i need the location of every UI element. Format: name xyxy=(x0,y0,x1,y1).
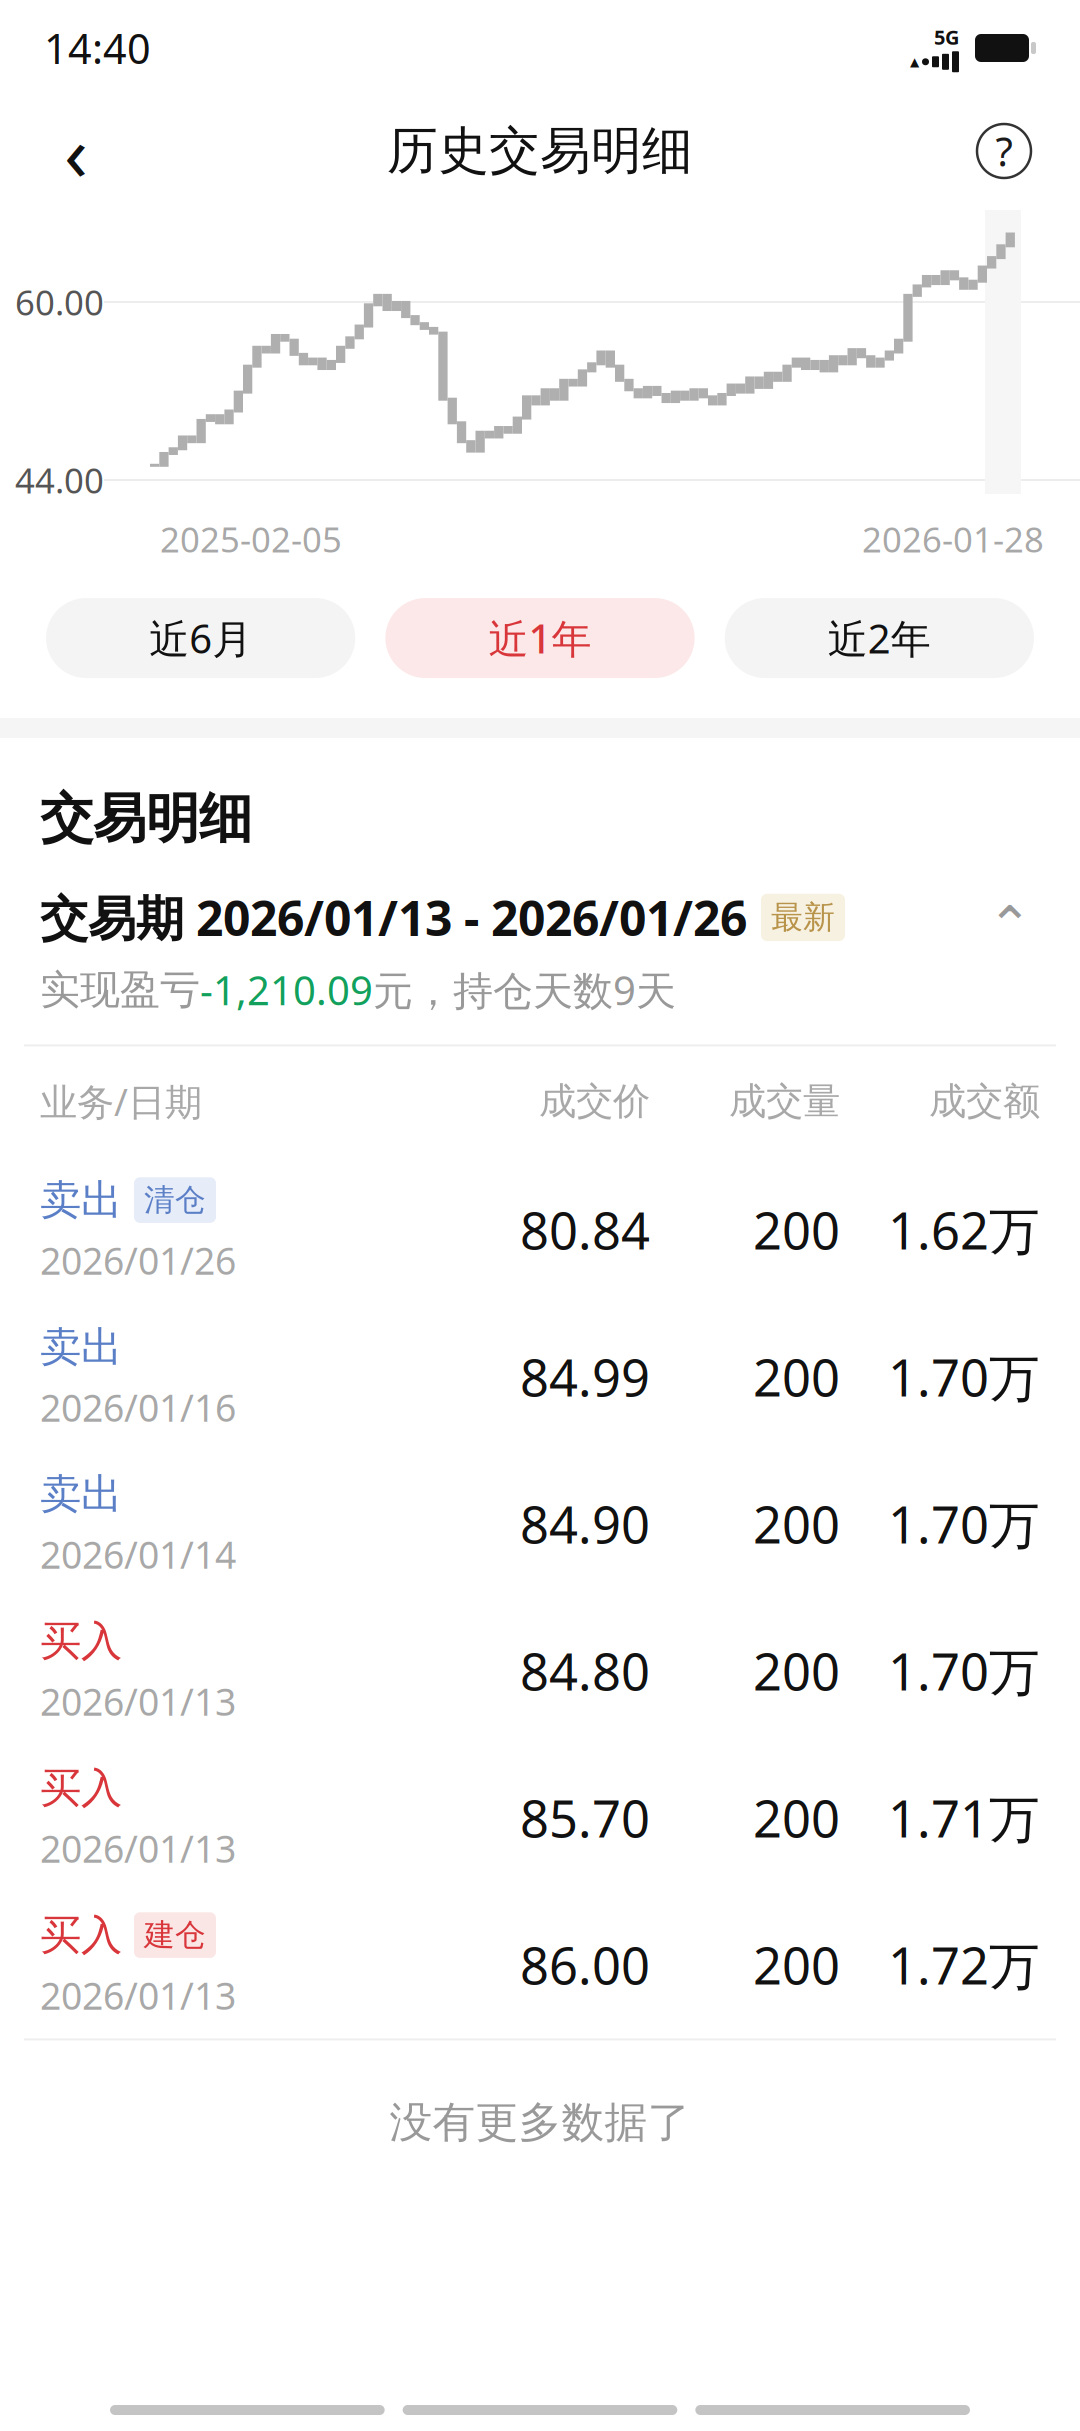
staticText: 60.00 xyxy=(15,279,104,325)
staticText: 1.70万 xyxy=(888,1637,1040,1705)
staticText: 85.70 xyxy=(520,1784,650,1852)
button[interactable]: 卖出 xyxy=(0,1303,1080,1450)
staticText: ⌃ xyxy=(987,895,1032,956)
staticText: ? xyxy=(995,124,1012,177)
staticText: 200 xyxy=(753,1196,840,1264)
staticText: 交易期 2026/01/13 - 2026/01/26 xyxy=(40,885,747,949)
staticText: 2026/01/14 xyxy=(40,1529,236,1579)
staticText: 没有更多数据了 xyxy=(389,2096,690,2149)
staticText: 1.71万 xyxy=(888,1784,1040,1852)
staticText: 2026/01/13 xyxy=(40,1823,236,1873)
button[interactable]: 买入 xyxy=(0,1744,1080,1891)
button[interactable]: 买入 xyxy=(0,1891,1080,2038)
staticText: 80.84 xyxy=(520,1196,650,1264)
staticText: 84.80 xyxy=(520,1637,650,1705)
staticText: ‹ xyxy=(64,100,88,202)
staticText: 卖出 xyxy=(40,1469,122,1519)
staticText: 清仓 xyxy=(144,1181,206,1219)
staticText: 近6月 xyxy=(149,611,252,665)
staticText: 86.00 xyxy=(520,1931,650,1999)
staticText: 2025-02-05 xyxy=(160,516,342,562)
staticText: 成交量 xyxy=(729,1078,840,1124)
staticText: 2026-01-28 xyxy=(862,516,1044,562)
staticText: 建仓 xyxy=(144,1916,206,1954)
staticText: 成交额 xyxy=(929,1078,1040,1124)
button[interactable]: 交易期 2026/01/13 - 2026/01/26 xyxy=(0,885,1080,1044)
staticText: 2026/01/13 xyxy=(40,1676,236,1726)
staticText: 实现盈亏 xyxy=(40,965,200,1014)
staticText: 1.62万 xyxy=(888,1196,1040,1264)
staticText: 近1年 xyxy=(488,611,591,665)
staticText: 近2年 xyxy=(828,611,931,665)
staticText: ▲ xyxy=(910,55,919,69)
button[interactable]: 卖出 xyxy=(0,1156,1080,1303)
button[interactable]: 帮助 xyxy=(956,103,1052,199)
staticText: 买入 xyxy=(40,1910,122,1960)
staticText: 业务/日期 xyxy=(40,1077,202,1126)
staticText: 历史交易明细 xyxy=(387,120,693,182)
staticText: 200 xyxy=(753,1490,840,1558)
staticText: 200 xyxy=(753,1637,840,1705)
staticText: 84.99 xyxy=(520,1343,650,1411)
staticText: 成交价 xyxy=(539,1078,650,1124)
staticText: 卖出 xyxy=(40,1175,122,1225)
staticText: 买入 xyxy=(40,1616,122,1666)
staticText: 1.72万 xyxy=(888,1931,1040,1999)
staticText: 14:40 xyxy=(44,21,151,75)
staticText: 200 xyxy=(753,1343,840,1411)
staticText: 卖出 xyxy=(40,1322,122,1372)
button[interactable]: 近1年 xyxy=(385,598,695,678)
staticText: 2026/01/16 xyxy=(40,1382,236,1432)
staticText: 200 xyxy=(753,1784,840,1852)
staticText: 买入 xyxy=(40,1763,122,1813)
button[interactable]: 近2年 xyxy=(725,598,1034,678)
staticText: 交易明细 xyxy=(40,786,252,851)
button[interactable]: 返回 xyxy=(28,103,124,199)
staticText: 44.00 xyxy=(15,457,104,503)
staticText: 1.70万 xyxy=(888,1490,1040,1558)
button[interactable]: 卖出 xyxy=(0,1450,1080,1597)
staticText: 2026/01/13 xyxy=(40,1970,236,2020)
staticText: 最新 xyxy=(771,898,835,937)
button[interactable]: 近6月 xyxy=(46,598,355,678)
staticText: -1,210.09 xyxy=(200,963,373,1016)
staticText: 2026/01/26 xyxy=(40,1235,236,1285)
staticText: 5G xyxy=(934,24,959,50)
staticText: 200 xyxy=(753,1931,840,1999)
staticText: 元，持仓天数9天 xyxy=(373,963,676,1016)
staticText: 84.90 xyxy=(520,1490,650,1558)
staticText: 1.70万 xyxy=(888,1343,1040,1411)
button[interactable]: 买入 xyxy=(0,1597,1080,1744)
